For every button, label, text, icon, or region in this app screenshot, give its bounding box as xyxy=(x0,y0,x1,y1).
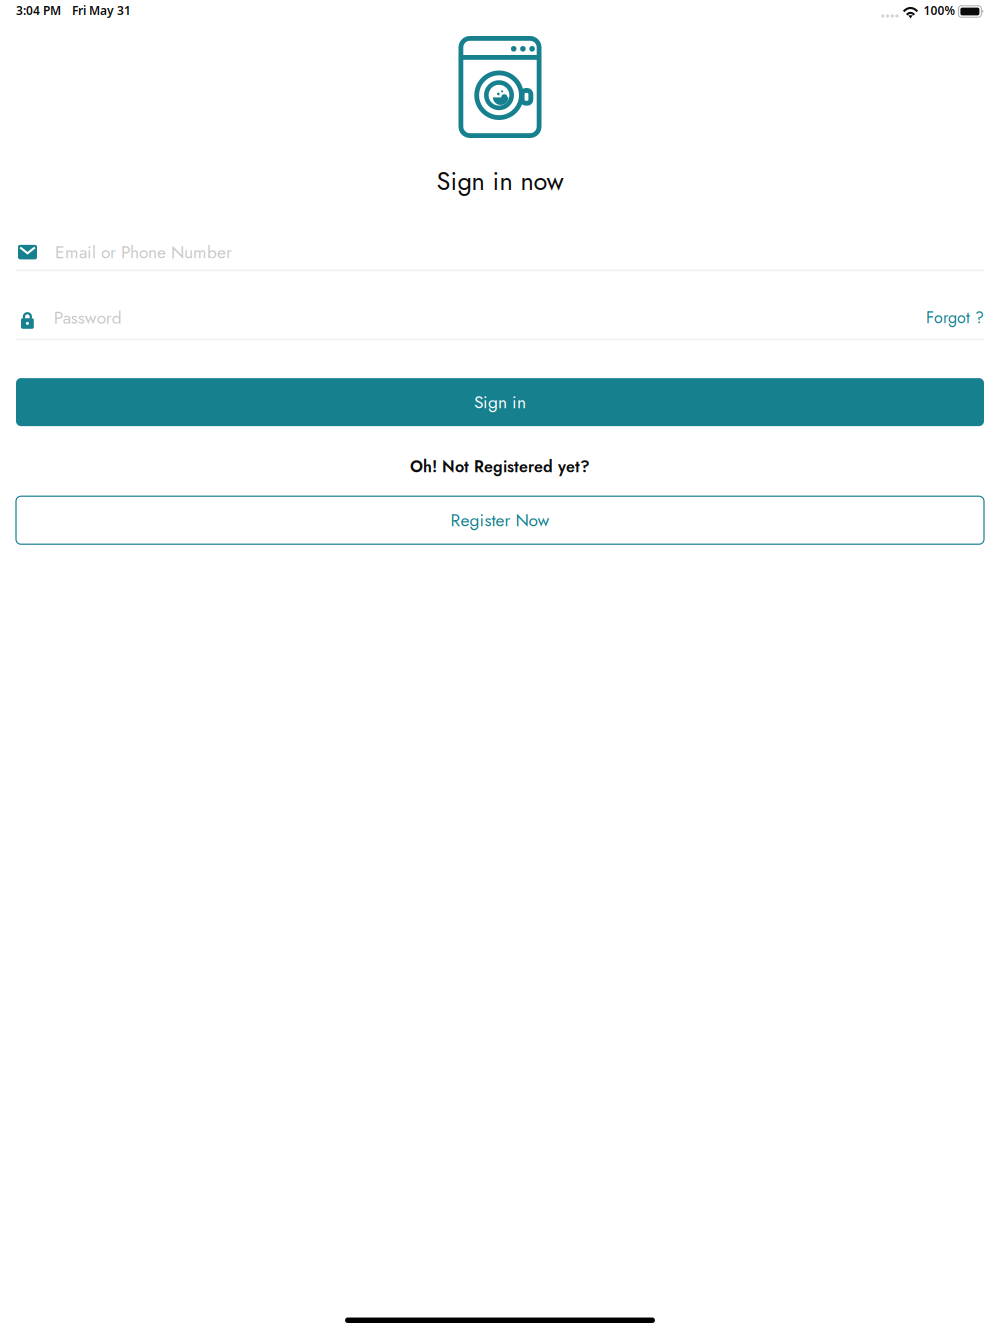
button[interactable]: Register Now xyxy=(16,496,984,544)
staticText: Password xyxy=(54,305,122,330)
staticText: Email or Phone Number xyxy=(55,240,232,265)
staticText: Sign in xyxy=(474,390,526,415)
staticText: Oh! Not Registered yet? xyxy=(410,455,590,478)
staticText: 3:04 PM xyxy=(16,2,61,18)
staticText: 100% xyxy=(923,2,955,18)
staticText: Sign in now xyxy=(436,163,563,200)
staticText: Fri May 31 xyxy=(72,2,131,18)
button[interactable]: Sign in xyxy=(16,378,984,426)
staticText: Forgot ? xyxy=(926,306,984,329)
button[interactable]: Forgot ? xyxy=(926,306,984,329)
staticText: Register Now xyxy=(450,508,549,533)
